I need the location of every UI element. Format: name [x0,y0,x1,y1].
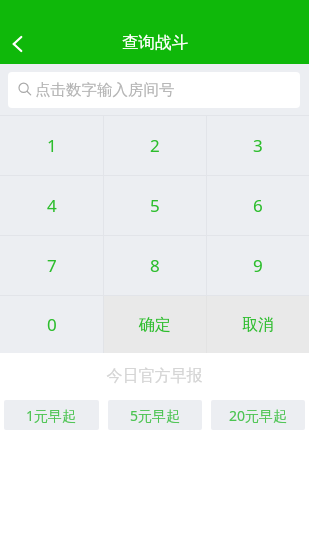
button[interactable]: 1元早起 [4,400,99,430]
staticText: 4 [47,194,57,217]
button[interactable]: 5 [104,176,206,235]
button[interactable]: 20元早起 [211,400,305,430]
button[interactable]: 9 [207,236,309,295]
staticText: 点击数字输入房间号 [35,80,175,100]
button[interactable]: 0 [0,296,103,353]
staticText: 5 [150,194,160,217]
staticText: 20元早起 [229,406,288,425]
button[interactable]: 5元早起 [108,400,202,430]
button[interactable]: 7 [0,236,103,295]
button[interactable]: 1 [0,116,103,175]
staticText: 7 [47,254,57,277]
staticText: 1 [47,134,57,157]
staticText: 5元早起 [130,406,181,425]
staticText: 1元早起 [26,406,77,425]
staticText: 3 [253,134,263,157]
staticText: 6 [253,194,263,217]
staticText: 确定 [139,315,171,335]
staticText: 0 [47,313,57,336]
button[interactable]: 确定 [104,296,206,353]
staticText: 查询战斗 [122,32,188,53]
button[interactable]: 6 [207,176,309,235]
button[interactable]: Back [4,22,30,66]
staticText: 9 [253,254,263,277]
staticText: 取消 [242,315,274,335]
button[interactable]: 取消 [207,296,309,353]
staticText: 8 [150,254,160,277]
button[interactable]: 点击数字输入房间号 [8,72,300,108]
button[interactable]: 4 [0,176,103,235]
staticText: 2 [150,134,160,157]
button[interactable]: 8 [104,236,206,295]
button[interactable]: 3 [207,116,309,175]
button[interactable]: 2 [104,116,206,175]
staticText: 今日官方早报 [0,366,309,386]
